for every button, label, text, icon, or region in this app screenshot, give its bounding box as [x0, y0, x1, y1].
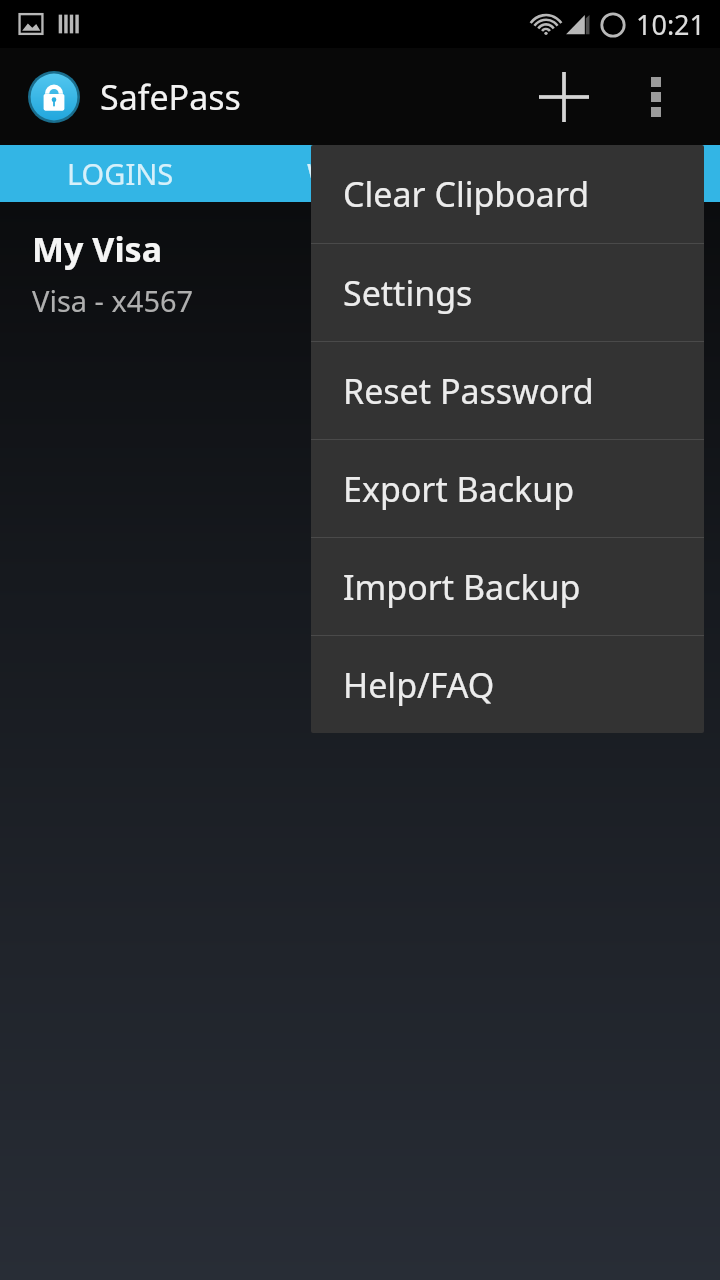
- staticText: Export Backup: [343, 466, 575, 512]
- staticText: 10:21: [636, 6, 706, 43]
- staticText: Settings: [343, 270, 473, 316]
- staticText: Import Backup: [343, 564, 581, 610]
- button[interactable]: NOTES: [480, 145, 720, 202]
- staticText: My Visa: [32, 226, 163, 272]
- button[interactable]: Import Backup: [311, 538, 704, 635]
- button[interactable]: Settings: [311, 244, 704, 341]
- staticText: LOGINS: [67, 154, 174, 193]
- staticText: Clear Clipboard: [343, 171, 590, 217]
- button[interactable]: More options: [620, 61, 692, 133]
- staticText: NOTES: [554, 154, 646, 193]
- staticText: WALLET: [307, 154, 414, 193]
- staticText: SafePass: [100, 74, 241, 120]
- staticText: Visa - x4567: [32, 281, 194, 320]
- staticText: Reset Password: [343, 368, 594, 414]
- button[interactable]: WALLET: [240, 145, 480, 202]
- button[interactable]: LOGINS: [0, 145, 240, 202]
- button[interactable]: Export Backup: [311, 440, 704, 537]
- button[interactable]: Reset Password: [311, 342, 704, 439]
- button[interactable]: Add: [528, 61, 600, 133]
- button[interactable]: My Visa: [0, 202, 720, 342]
- button[interactable]: Clear Clipboard: [311, 145, 704, 243]
- staticText: Help/FAQ: [343, 662, 495, 708]
- button[interactable]: Help/FAQ: [311, 636, 704, 733]
